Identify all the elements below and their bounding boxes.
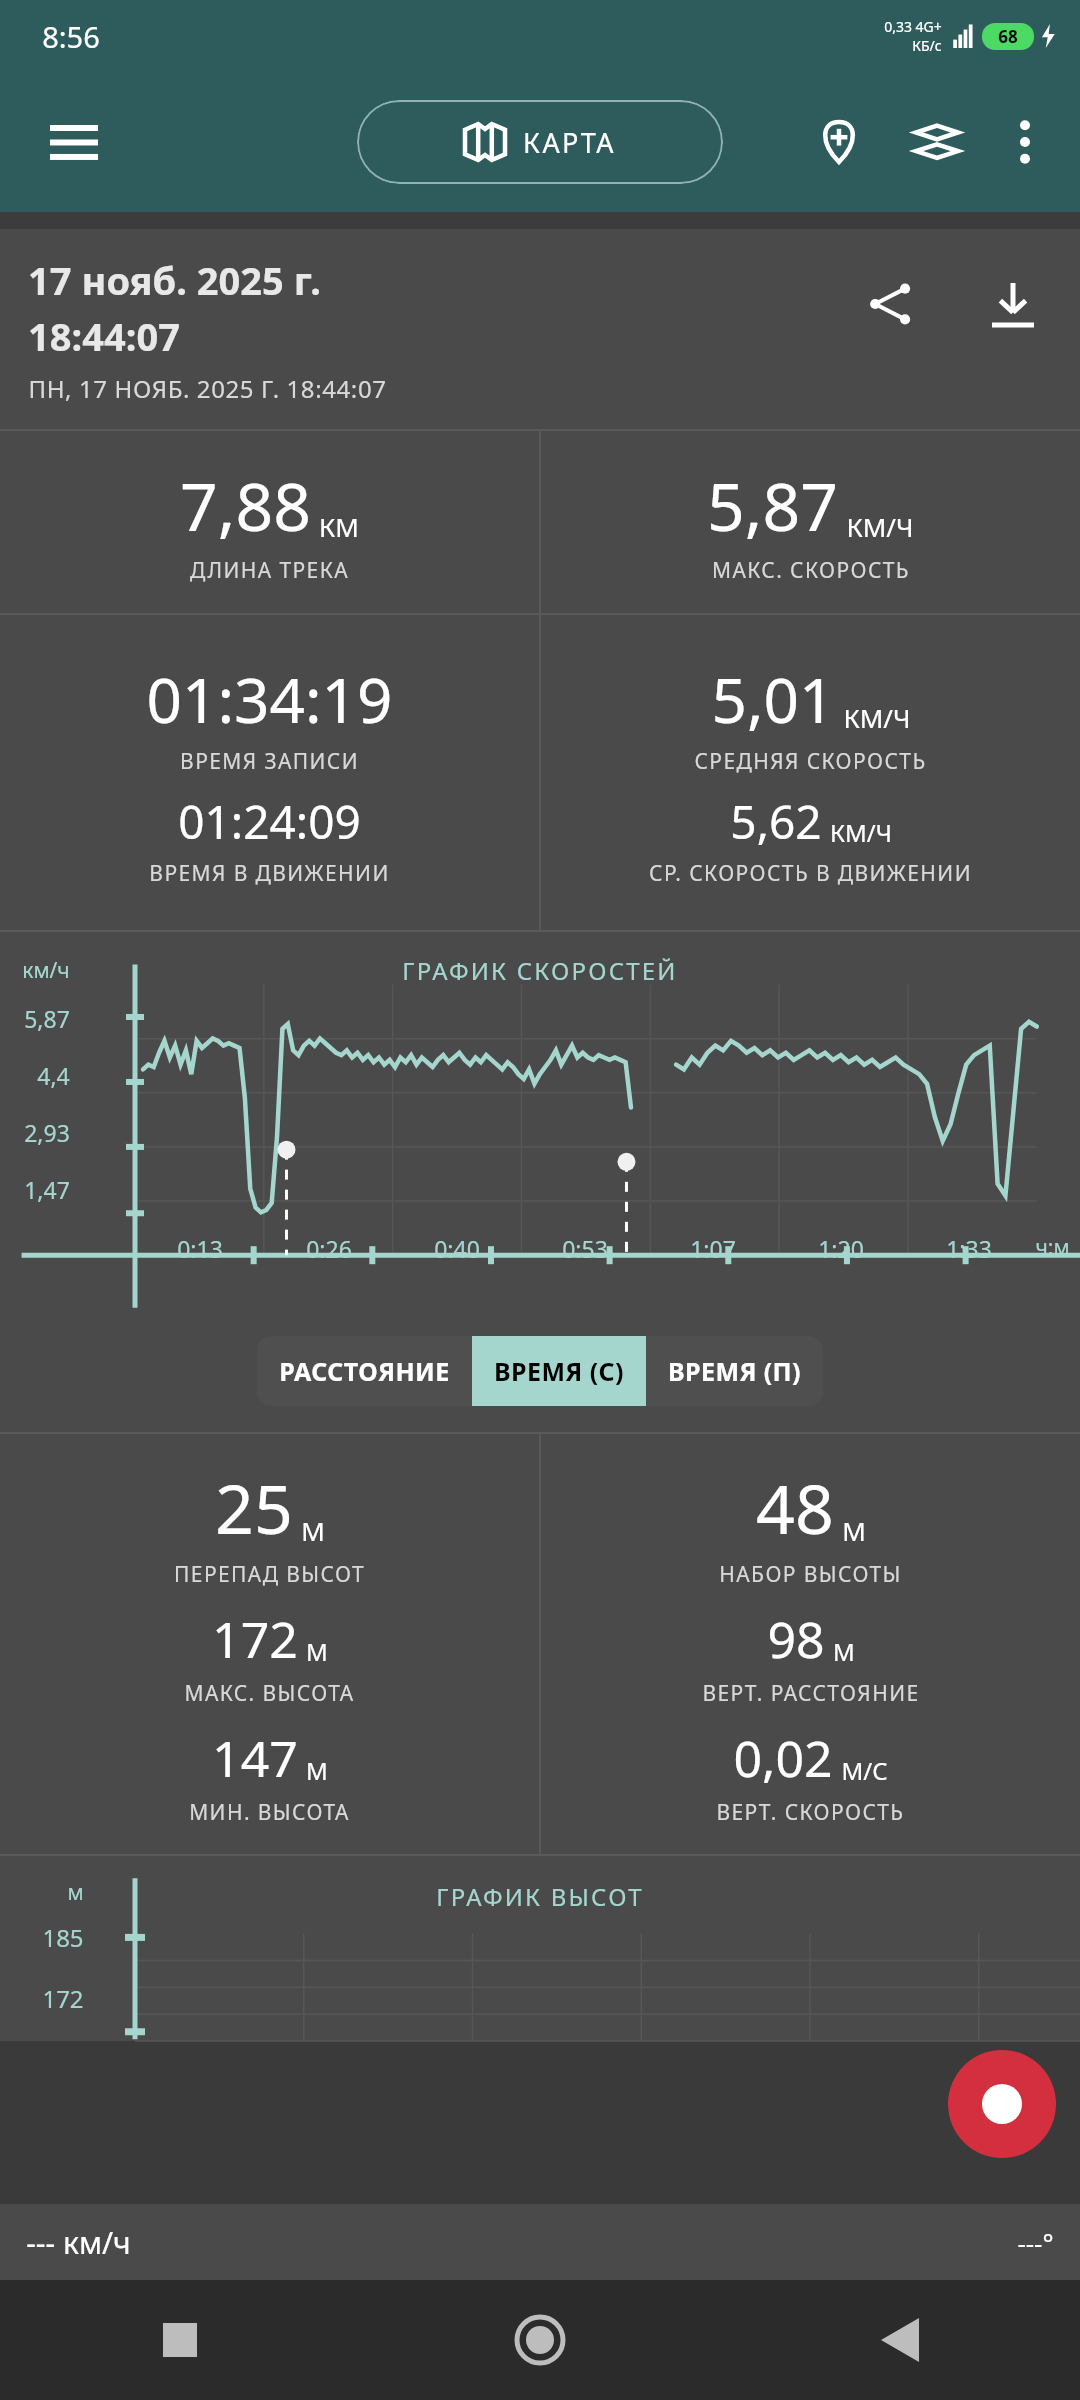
staticText: ВЕРТ. РАССТОЯНИЕ bbox=[702, 1679, 920, 1708]
staticText: МАКС. ВЫСОТА bbox=[184, 1679, 355, 1708]
staticText: М/С bbox=[841, 1754, 888, 1787]
staticText: КБ/с bbox=[912, 36, 942, 55]
staticText: 7,88 bbox=[180, 460, 311, 550]
button[interactable]: Home bbox=[360, 2280, 720, 2400]
staticText: м bbox=[67, 1878, 84, 1907]
staticText: км/ч bbox=[22, 956, 70, 985]
staticText: 18:44:07 bbox=[28, 310, 180, 362]
staticText: ВЕРТ. СКОРОСТЬ bbox=[716, 1798, 905, 1827]
button[interactable]: РАССТОЯНИЕ bbox=[257, 1336, 472, 1406]
staticText: 185 bbox=[42, 1921, 84, 1954]
staticText: МИН. ВЫСОТА bbox=[189, 1798, 350, 1827]
button[interactable]: Layers bbox=[900, 105, 974, 179]
button[interactable]: Share bbox=[848, 261, 934, 347]
staticText: ГРАФИК СКОРОСТЕЙ bbox=[402, 954, 678, 987]
staticText: 0:13 bbox=[177, 1233, 223, 1264]
staticText: ВРЕМЯ В ДВИЖЕНИИ bbox=[149, 859, 390, 888]
staticText: М bbox=[842, 1513, 866, 1548]
staticText: 0:26 bbox=[306, 1233, 352, 1264]
staticText: 5,01 bbox=[711, 657, 835, 741]
staticText: 5,87 bbox=[707, 460, 838, 550]
button[interactable]: Add marker bbox=[802, 105, 876, 179]
button[interactable]: 25 bbox=[0, 1434, 539, 1854]
staticText: 0,33 4G+ bbox=[884, 17, 942, 36]
staticText: РАССТОЯНИЕ bbox=[279, 1354, 450, 1388]
button[interactable]: Recents bbox=[0, 2280, 360, 2400]
staticText: ВРЕМЯ (П) bbox=[668, 1354, 801, 1388]
staticText: 0:53 bbox=[562, 1233, 608, 1264]
staticText: 4,4 bbox=[37, 1060, 70, 1091]
button[interactable]: 01:34:19 bbox=[0, 615, 539, 930]
staticText: ГРАФИК ВЫСОТ bbox=[436, 1880, 644, 1913]
staticText: КМ/Ч bbox=[830, 816, 892, 849]
button[interactable]: ВРЕМЯ (П) bbox=[646, 1336, 823, 1406]
staticText: ПН, 17 НОЯБ. 2025 Г. 18:44:07 bbox=[28, 372, 387, 405]
staticText: 1:33 bbox=[946, 1233, 992, 1264]
staticText: 68 bbox=[998, 25, 1018, 48]
staticText: М bbox=[301, 1513, 325, 1548]
button[interactable]: Back bbox=[720, 2280, 1080, 2400]
staticText: 1:20 bbox=[818, 1233, 864, 1264]
staticText: ВРЕМЯ (С) bbox=[494, 1354, 624, 1388]
staticText: М bbox=[306, 1635, 328, 1668]
staticText: 1,47 bbox=[24, 1174, 70, 1205]
staticText: 25 bbox=[215, 1461, 293, 1554]
button[interactable]: Menu bbox=[40, 108, 108, 176]
staticText: ВРЕМЯ ЗАПИСИ bbox=[180, 747, 359, 776]
staticText: 172 bbox=[42, 1982, 84, 2015]
button[interactable]: 5,01 bbox=[541, 615, 1080, 930]
staticText: 48 bbox=[756, 1461, 834, 1554]
button[interactable]: 5,87 bbox=[541, 431, 1080, 613]
button[interactable]: Download bbox=[970, 261, 1056, 347]
button[interactable]: 48 bbox=[541, 1434, 1080, 1854]
staticText: 172 bbox=[212, 1605, 298, 1673]
staticText: ---° bbox=[1017, 2225, 1054, 2260]
staticText: М bbox=[306, 1754, 328, 1787]
staticText: 01:24:09 bbox=[178, 790, 361, 853]
staticText: КМ/Ч bbox=[846, 509, 914, 544]
staticText: 0:40 bbox=[434, 1233, 480, 1264]
staticText: 98 bbox=[767, 1605, 825, 1673]
staticText: 1:07 bbox=[690, 1233, 736, 1264]
staticText: 5,87 bbox=[24, 1003, 70, 1034]
staticText: СРЕДНЯЯ СКОРОСТЬ bbox=[694, 747, 927, 776]
staticText: КМ bbox=[319, 509, 359, 544]
button[interactable]: Record bbox=[948, 2050, 1056, 2158]
staticText: 5,62 bbox=[730, 790, 822, 853]
staticText: 8:56 bbox=[42, 17, 100, 56]
button[interactable]: ВРЕМЯ (С) bbox=[472, 1336, 646, 1406]
staticText: КМ/Ч bbox=[843, 700, 911, 735]
button[interactable]: 7,88 bbox=[0, 431, 539, 613]
button[interactable]: КАРТА bbox=[357, 100, 723, 184]
staticText: --- км/ч bbox=[26, 2222, 131, 2263]
staticText: 2,93 bbox=[24, 1117, 70, 1148]
staticText: СР. СКОРОСТЬ В ДВИЖЕНИИ bbox=[649, 859, 972, 888]
staticText: 17 нояб. 2025 г. bbox=[28, 254, 321, 306]
staticText: 01:34:19 bbox=[146, 657, 393, 741]
staticText: ч:м bbox=[1035, 1233, 1070, 1262]
staticText: М bbox=[833, 1635, 855, 1668]
staticText: 147 bbox=[212, 1724, 298, 1792]
staticText: 0,02 bbox=[733, 1724, 833, 1792]
staticText: ДЛИНА ТРЕКА bbox=[190, 556, 349, 585]
staticText: МАКС. СКОРОСТЬ bbox=[712, 556, 910, 585]
staticText: ПЕРЕПАД ВЫСОТ bbox=[174, 1560, 365, 1589]
staticText: КАРТА bbox=[523, 124, 616, 161]
button[interactable]: More options bbox=[988, 105, 1062, 179]
staticText: НАБОР ВЫСОТЫ bbox=[719, 1560, 902, 1589]
